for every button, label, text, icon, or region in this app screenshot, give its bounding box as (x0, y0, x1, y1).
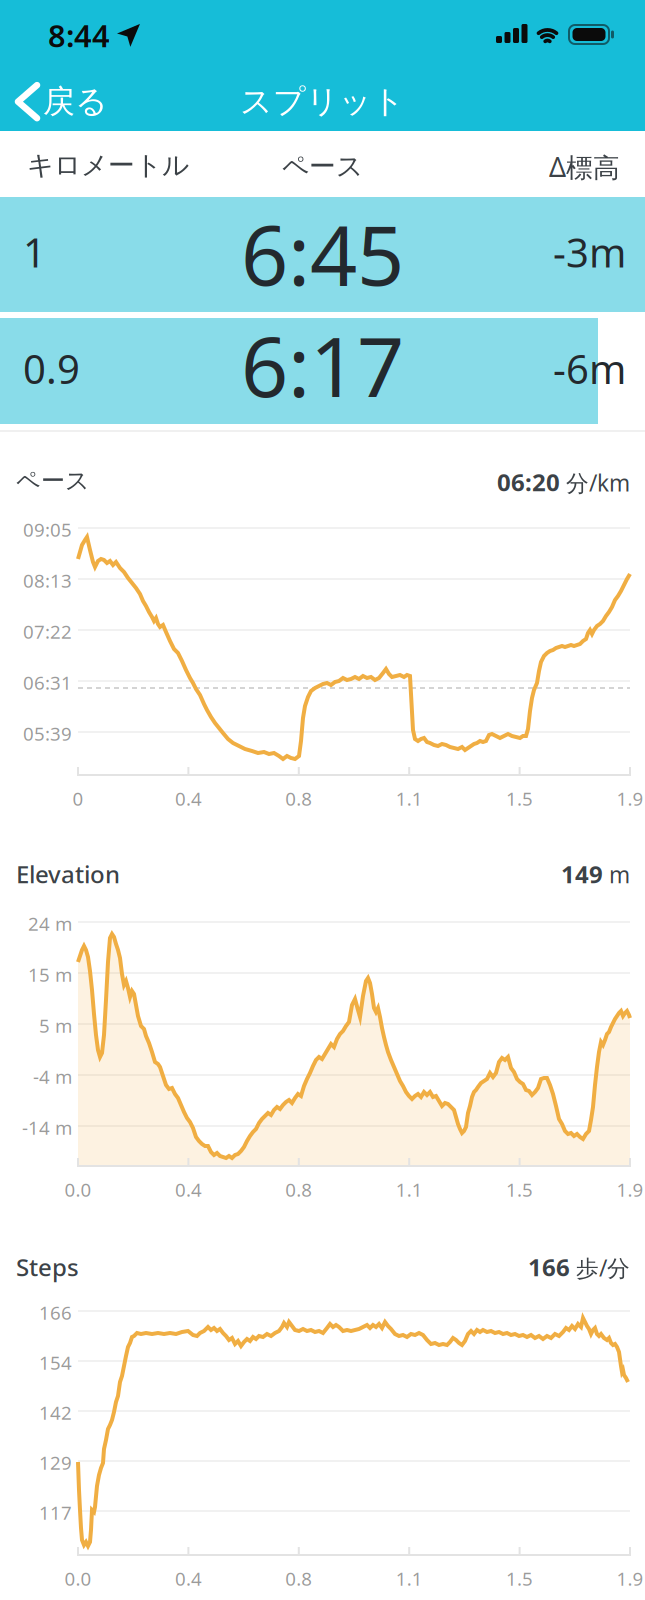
staticText: 1.1 (396, 1177, 423, 1202)
staticText: 09:05 (23, 517, 72, 542)
staticText: -6m (553, 342, 626, 395)
staticText: 0.4 (175, 1566, 202, 1591)
staticText: 0.0 (64, 1177, 91, 1202)
staticText: 0.0 (64, 1566, 91, 1591)
staticText: 166 (39, 1300, 72, 1325)
staticText: 1.1 (396, 786, 423, 811)
staticText: 6:45 (241, 198, 404, 308)
staticText: -3m (553, 225, 626, 279)
staticText: 05:39 (23, 721, 72, 746)
staticText: 166 (528, 1251, 570, 1283)
staticText: 117 (39, 1500, 72, 1525)
staticText: 06:31 (23, 670, 72, 695)
staticText: 0.9 (23, 342, 80, 395)
staticText: 1.9 (616, 1566, 643, 1591)
staticText: Δ標高 (549, 149, 620, 185)
button[interactable]: Back (14, 82, 112, 121)
staticText: 8:44 (48, 15, 110, 56)
staticText: 24 m (28, 911, 72, 936)
staticText: 0.8 (285, 786, 312, 811)
staticText: m (609, 859, 630, 889)
staticText: ペース (282, 150, 363, 183)
staticText: 分/km (566, 468, 630, 498)
staticText: 15 m (28, 962, 72, 987)
staticText: 0.8 (285, 1177, 312, 1202)
staticText: 1.9 (616, 786, 643, 811)
staticText: スプリット (240, 82, 405, 121)
staticText: 154 (39, 1350, 72, 1375)
staticText: 戻る (43, 82, 108, 121)
staticText: Elevation (16, 858, 120, 890)
staticText: 6:17 (241, 310, 404, 420)
staticText: 1.9 (616, 1177, 643, 1202)
staticText: Steps (16, 1251, 79, 1283)
staticText: 1.5 (506, 1177, 533, 1202)
staticText: 1 (23, 225, 46, 279)
staticText: キロメートル (27, 149, 189, 182)
staticText: 08:13 (23, 568, 72, 593)
staticText: 1.5 (506, 786, 533, 811)
staticText: -4 m (33, 1064, 72, 1089)
staticText: 142 (39, 1400, 72, 1425)
staticText: 0 (72, 786, 83, 811)
staticText: 1.1 (396, 1566, 423, 1591)
staticText: 0.4 (175, 1177, 202, 1202)
staticText: -14 m (22, 1115, 72, 1140)
staticText: 129 (39, 1450, 72, 1475)
staticText: 5 m (39, 1013, 72, 1038)
staticText: 149 (561, 858, 603, 890)
staticText: 歩/分 (576, 1253, 630, 1283)
staticText: 07:22 (23, 619, 72, 644)
staticText: 0.4 (175, 786, 202, 811)
staticText: 06:20 (497, 466, 560, 498)
staticText: ペース (16, 466, 90, 495)
staticText: 1.5 (506, 1566, 533, 1591)
staticText: 0.8 (285, 1566, 312, 1591)
